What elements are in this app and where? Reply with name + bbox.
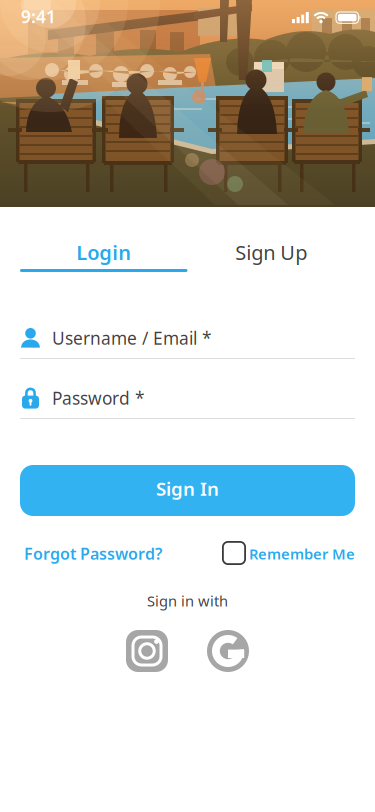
- staticText: Forgot Password?: [24, 543, 162, 564]
- staticText: Sign Up: [235, 239, 307, 266]
- staticText: Sign in with: [147, 591, 228, 610]
- staticText: Password *: [52, 386, 145, 409]
- staticText: 9:41: [21, 5, 56, 28]
- staticText: Login: [76, 239, 131, 266]
- staticText: Sign In: [156, 476, 219, 501]
- staticText: Username / Email *: [52, 326, 212, 349]
- staticText: Remember Me: [249, 544, 355, 563]
